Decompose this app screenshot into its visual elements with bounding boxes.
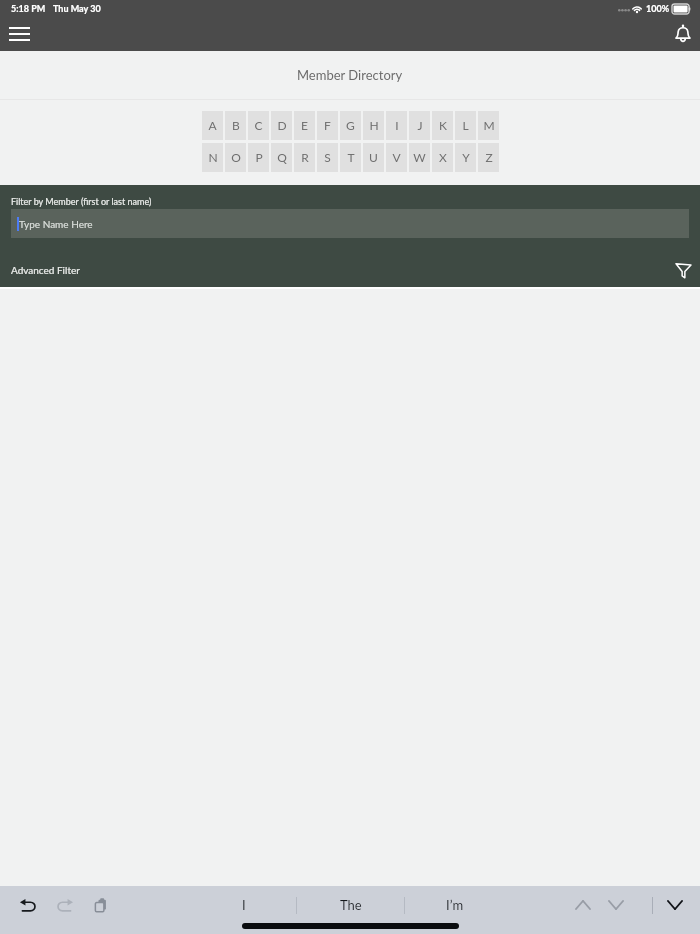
button[interactable]: F <box>317 111 338 140</box>
button[interactable]: C <box>248 111 269 140</box>
staticText: Z <box>485 150 493 164</box>
staticText: A <box>208 118 217 132</box>
staticText: Y <box>462 150 470 164</box>
staticText: I <box>395 118 399 132</box>
staticText: S <box>324 150 331 164</box>
staticText: E <box>301 118 308 132</box>
button[interactable]: Menu <box>4 19 34 48</box>
button[interactable]: G <box>340 111 361 140</box>
other: Filter <box>670 257 696 283</box>
button[interactable]: Y <box>455 143 476 172</box>
staticText: F <box>324 118 331 132</box>
staticText: I’m <box>446 897 464 913</box>
button[interactable]: I’m <box>405 890 512 920</box>
staticText: P <box>255 150 263 164</box>
button[interactable]: M <box>478 111 499 140</box>
staticText: V <box>392 150 401 164</box>
staticText: Type Name Here <box>19 218 93 230</box>
staticText: Thu May 30 <box>53 3 101 14</box>
staticText: 5:18 PM <box>11 3 46 14</box>
button[interactable]: D <box>271 111 292 140</box>
staticText: Member Directory <box>297 67 403 83</box>
button[interactable]: Z <box>478 143 499 172</box>
staticText: M <box>483 118 495 132</box>
button[interactable]: N <box>202 143 223 172</box>
button[interactable]: Clipboard <box>88 892 114 918</box>
button[interactable]: J <box>409 111 430 140</box>
button[interactable]: Previous suggestion <box>570 892 596 918</box>
staticText: Advanced Filter <box>11 264 80 276</box>
button[interactable]: I <box>189 890 296 920</box>
staticText: K <box>439 118 447 132</box>
staticText: N <box>208 150 218 164</box>
staticText: The <box>340 897 362 913</box>
staticText: G <box>346 118 355 132</box>
button[interactable]: Next suggestion <box>603 892 629 918</box>
staticText: I <box>242 897 246 913</box>
button[interactable]: Notifications <box>668 19 698 48</box>
staticText: C <box>254 118 263 132</box>
button[interactable]: K <box>432 111 453 140</box>
staticText: J <box>417 118 423 132</box>
button[interactable]: R <box>294 143 315 172</box>
button[interactable]: Type Name Here <box>11 209 689 238</box>
staticText: B <box>232 118 240 132</box>
staticText: Q <box>277 150 287 164</box>
button[interactable]: P <box>248 143 269 172</box>
button[interactable]: U <box>363 143 384 172</box>
button[interactable]: S <box>317 143 338 172</box>
staticText: 100% <box>646 3 670 14</box>
staticText: H <box>369 118 379 132</box>
staticText: R <box>301 150 309 164</box>
button[interactable]: V <box>386 143 407 172</box>
button[interactable]: B <box>225 111 246 140</box>
button[interactable]: Redo <box>51 892 77 918</box>
staticText: W <box>413 150 426 164</box>
button[interactable]: W <box>409 143 430 172</box>
button[interactable]: H <box>363 111 384 140</box>
staticText: X <box>439 150 447 164</box>
staticText: Filter by Member (first or last name) <box>11 196 152 207</box>
staticText: T <box>347 150 355 164</box>
staticText: L <box>462 118 469 132</box>
staticText: U <box>369 150 378 164</box>
button[interactable]: X <box>432 143 453 172</box>
button[interactable]: The <box>297 890 404 920</box>
button[interactable]: A <box>202 111 223 140</box>
button[interactable]: Collapse <box>662 892 688 918</box>
staticText: O <box>231 150 241 164</box>
staticText: D <box>277 118 287 132</box>
button[interactable]: O <box>225 143 246 172</box>
button[interactable]: Advanced Filter <box>0 253 700 287</box>
button[interactable]: I <box>386 111 407 140</box>
button[interactable]: T <box>340 143 361 172</box>
button[interactable]: Undo <box>15 892 41 918</box>
button[interactable]: L <box>455 111 476 140</box>
button[interactable]: E <box>294 111 315 140</box>
button[interactable]: Q <box>271 143 292 172</box>
